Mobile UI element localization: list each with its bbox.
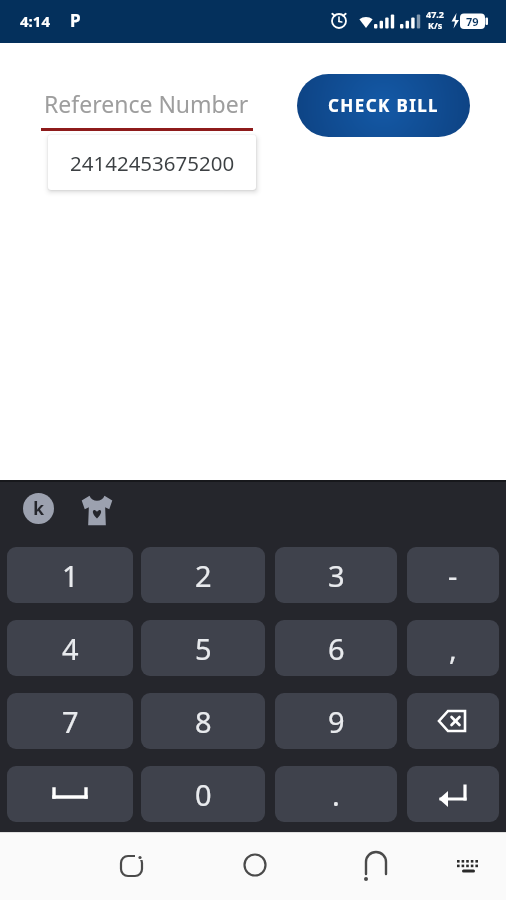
staticText: 47.2 (426, 8, 444, 20)
staticText: 6 (328, 629, 345, 668)
button[interactable]: k (23, 493, 54, 524)
staticText: 24142453675200 (70, 149, 235, 177)
button[interactable] (230, 853, 280, 893)
button[interactable]: 7 (7, 693, 133, 749)
staticText: k (33, 496, 45, 521)
staticText: Reference Number (44, 88, 249, 119)
staticText: 3 (328, 556, 345, 595)
staticText: 2 (195, 556, 212, 595)
staticText: 1 (62, 556, 79, 595)
staticText: P (70, 9, 81, 32)
staticText: 5 (195, 629, 212, 668)
staticText: 79 (466, 14, 479, 29)
staticText: , (449, 629, 457, 668)
button[interactable]: 1 (7, 547, 133, 603)
button[interactable]: CHECK BILL (297, 74, 470, 137)
button[interactable] (351, 853, 401, 893)
staticText: 9 (328, 702, 345, 741)
button[interactable]: 24142453675200 (48, 135, 256, 190)
button[interactable]: 2 (141, 547, 265, 603)
button[interactable]: . (275, 766, 397, 822)
staticText: K/s (428, 19, 443, 31)
button[interactable]: 9 (275, 693, 397, 749)
staticText: 4 (62, 629, 79, 668)
staticText: . (332, 775, 340, 814)
button[interactable]: 8 (141, 693, 265, 749)
button[interactable] (407, 693, 499, 749)
staticText: 8 (195, 702, 212, 741)
button[interactable]: , (407, 620, 499, 676)
button[interactable] (407, 766, 499, 822)
button[interactable]: 5 (141, 620, 265, 676)
button[interactable]: 4 (7, 620, 133, 676)
staticText: 7 (62, 702, 79, 741)
button[interactable]: 0 (141, 766, 265, 822)
button[interactable]: 3 (275, 547, 397, 603)
button[interactable] (107, 854, 157, 894)
button[interactable] (448, 855, 488, 885)
staticText: 4:14 (20, 11, 50, 31)
button[interactable] (80, 493, 114, 527)
staticText: 0 (195, 775, 212, 814)
button[interactable]: - (407, 547, 499, 603)
button[interactable]: 6 (275, 620, 397, 676)
button[interactable] (7, 766, 133, 822)
staticText: CHECK BILL (328, 94, 439, 117)
staticText: - (448, 556, 458, 595)
